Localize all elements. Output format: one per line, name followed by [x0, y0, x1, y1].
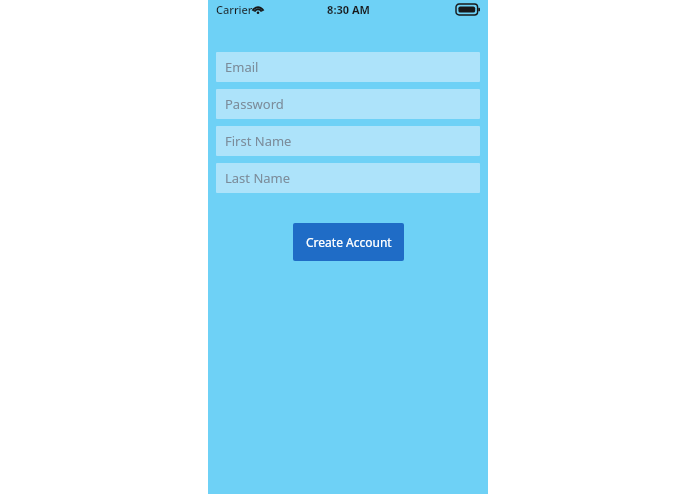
staticText: Create Account — [306, 234, 392, 250]
staticText: 8:30 AM — [327, 2, 370, 17]
staticText: First Name — [225, 132, 292, 150]
button[interactable]: First Name — [216, 126, 480, 156]
button[interactable]: Password — [216, 89, 480, 119]
staticText: Email — [225, 58, 259, 76]
staticText: Last Name — [225, 169, 291, 187]
button[interactable]: Email — [216, 52, 480, 82]
button[interactable]: Last Name — [216, 163, 480, 193]
button[interactable]: Create Account — [293, 223, 404, 261]
staticText: Carrier — [216, 2, 253, 17]
staticText: Password — [225, 95, 284, 113]
